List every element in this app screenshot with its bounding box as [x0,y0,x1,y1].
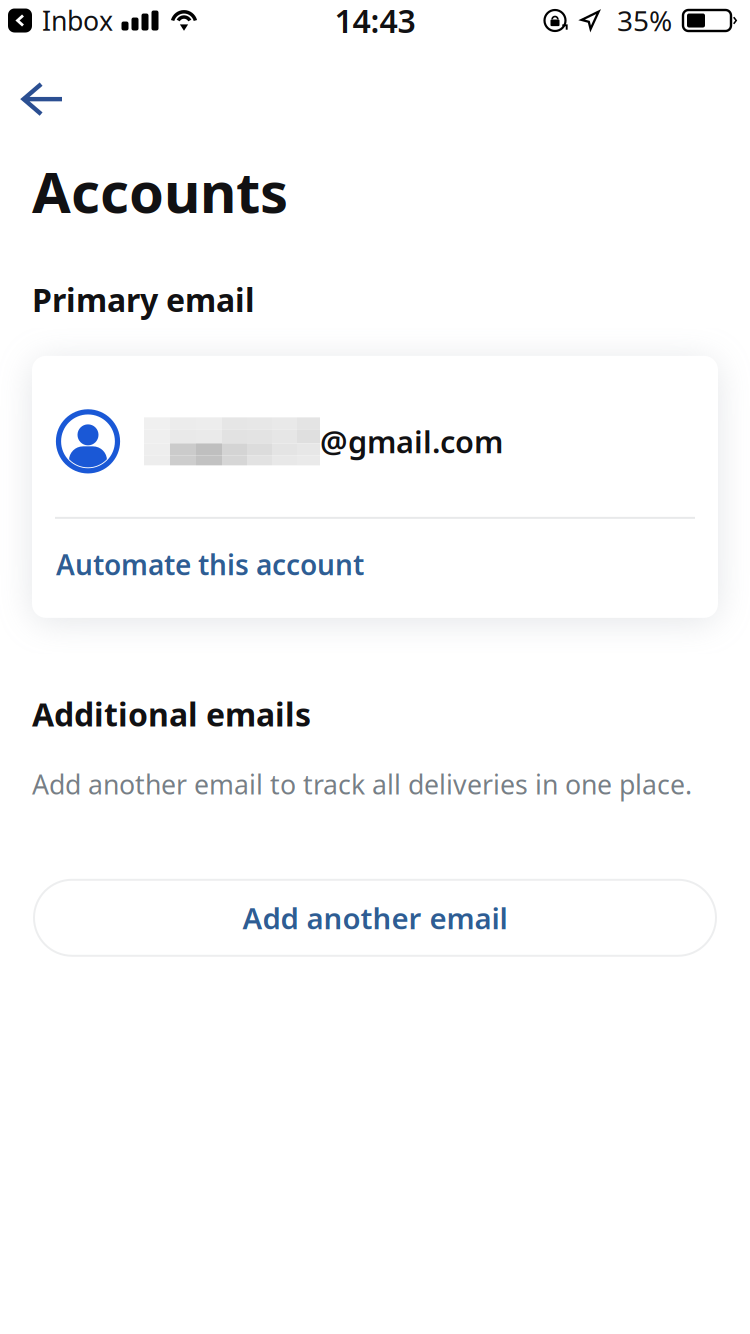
staticText: Add another email to track all deliverie… [32,766,692,802]
staticText: Additional emails [32,693,311,735]
button[interactable]: Back to Inbox [8,3,113,38]
staticText: Add another email [242,898,507,937]
staticText: 35% [617,2,672,39]
button[interactable]: Automate this account [32,519,718,618]
button[interactable]: Add another email [34,880,716,956]
staticText: Accounts [32,154,288,228]
button[interactable]: Back [0,71,79,127]
staticText: Inbox [42,3,113,38]
staticText: Primary email [32,278,255,321]
staticText: @gmail.com [320,421,503,462]
staticText: 14:43 [334,0,415,42]
staticText: Automate this account [56,546,364,583]
